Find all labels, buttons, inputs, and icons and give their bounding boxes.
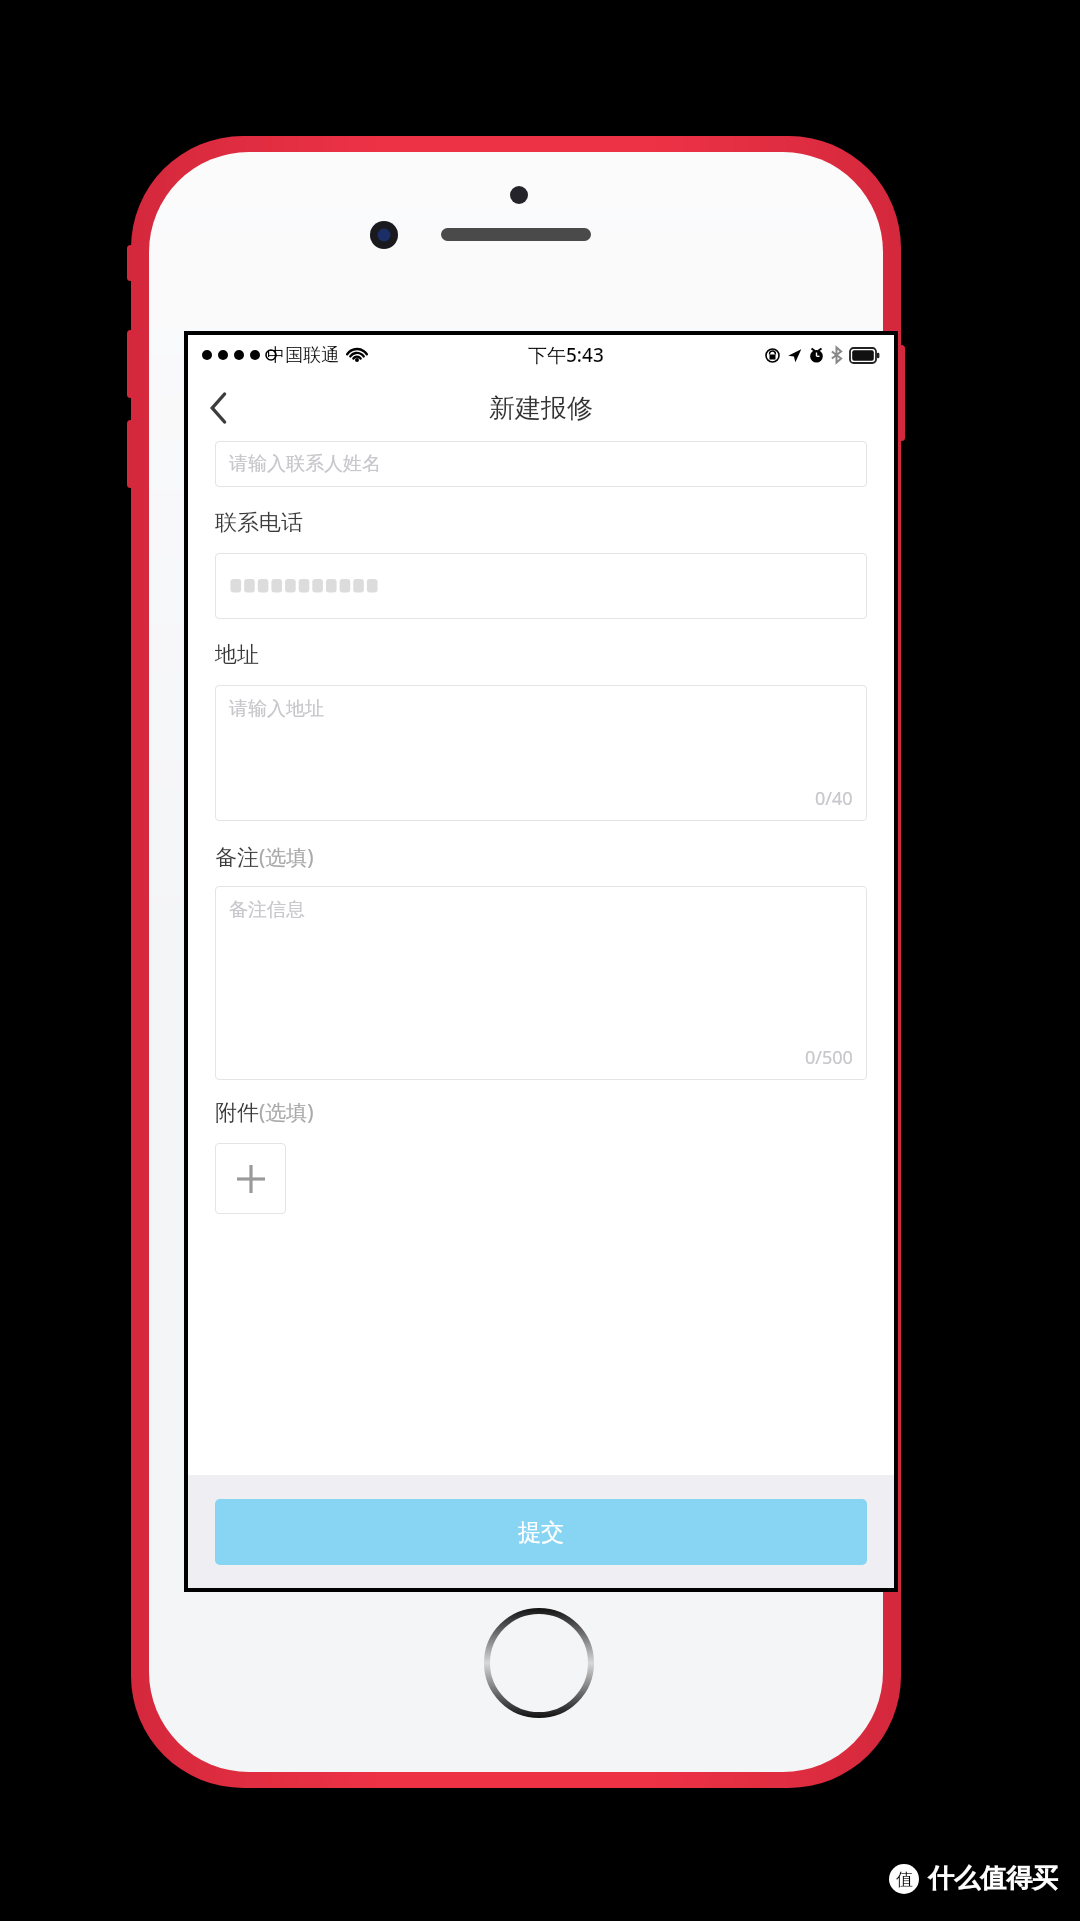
staticText: 请输入地址 [229, 697, 324, 721]
staticText: 什么值得买 [928, 1862, 1058, 1895]
staticText: 0/500 [805, 1045, 853, 1070]
staticText: 请输入联系人姓名 [229, 452, 381, 476]
staticText: 提交 [518, 1518, 564, 1547]
button[interactable]: 请输入地址 [215, 685, 867, 821]
button[interactable]: Back [188, 377, 250, 439]
staticText: (选填) [259, 843, 314, 872]
staticText: 中国联通 [267, 344, 339, 367]
button[interactable]: 请输入联系人姓名 [215, 441, 867, 487]
staticText: 备注 [215, 844, 259, 872]
staticText: 备注信息 [229, 898, 305, 922]
button[interactable]: Add attachment [215, 1143, 286, 1214]
staticText: 0/40 [815, 786, 853, 811]
button[interactable]: 备注信息 [215, 886, 867, 1080]
staticText: 联系电话 [215, 509, 303, 537]
staticText: 下午5:43 [528, 342, 604, 368]
staticText: 新建报修 [489, 392, 593, 425]
button[interactable] [215, 553, 867, 619]
staticText: 地址 [215, 641, 259, 669]
staticText: (选填) [259, 1098, 314, 1127]
button[interactable]: 提交 [215, 1499, 867, 1565]
staticText: 值 [896, 1869, 913, 1890]
staticText: 附件 [215, 1099, 259, 1127]
